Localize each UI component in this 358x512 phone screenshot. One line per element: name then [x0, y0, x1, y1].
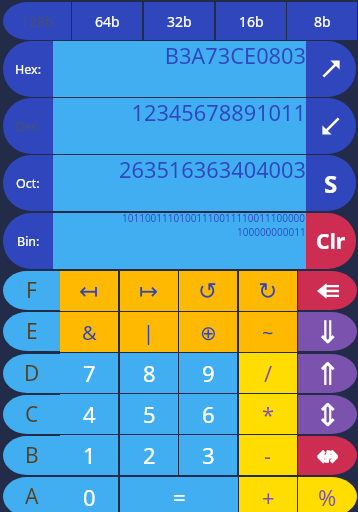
staticText: *: [262, 399, 275, 429]
button[interactable]: shift 1: [120, 271, 178, 311]
staticText: +: [262, 482, 275, 512]
staticText: Dec:: [15, 118, 41, 135]
staticText: |: [143, 319, 155, 346]
button[interactable]: 6: [179, 394, 237, 434]
staticText: Hex:: [15, 61, 42, 78]
staticText: B3A73CE0803: [164, 41, 306, 71]
button[interactable]: Collapse decimal: [306, 98, 356, 154]
button[interactable]: Bin:: [3, 213, 53, 269]
staticText: 8: [143, 358, 156, 388]
staticText: /: [264, 358, 273, 388]
staticText: -: [264, 440, 272, 470]
button[interactable]: Expand hexadecimal: [306, 41, 356, 97]
button[interactable]: /: [239, 353, 297, 393]
button[interactable]: plus: [239, 477, 297, 512]
button[interactable]: 0: [60, 477, 118, 512]
button[interactable]: or: [120, 312, 178, 352]
button[interactable]: 5: [120, 394, 178, 434]
button[interactable]: 8b: [287, 2, 357, 40]
staticText: S: [324, 167, 338, 200]
staticText: 128b: [21, 12, 54, 31]
button[interactable]: Clear: [306, 213, 356, 269]
staticText: C: [25, 400, 39, 429]
button[interactable]: 10110011101001110011110011100000: [53, 213, 306, 269]
staticText: Clr: [316, 227, 346, 256]
staticText: A: [25, 482, 39, 511]
button[interactable]: 128b: [3, 2, 71, 40]
staticText: 16b: [239, 12, 264, 31]
button[interactable]: B3A73CE0803: [53, 41, 306, 97]
button[interactable]: 12345678891011: [53, 98, 306, 154]
staticText: Oct:: [16, 175, 40, 192]
staticText: 4: [83, 399, 96, 429]
button[interactable]: and: [60, 312, 118, 352]
staticText: Bin:: [17, 233, 40, 250]
staticText: D: [24, 359, 40, 388]
button[interactable]: 64b: [72, 2, 142, 40]
staticText: 2: [143, 440, 156, 470]
button[interactable]: Reverse bytes: [298, 436, 357, 475]
staticText: 7: [83, 358, 96, 388]
button[interactable]: xor: [179, 312, 237, 352]
button[interactable]: 8: [120, 353, 178, 393]
button[interactable]: D: [3, 354, 60, 393]
button[interactable]: 32b: [144, 2, 214, 40]
staticText: 3: [202, 440, 215, 470]
staticText: ⇓: [315, 314, 341, 350]
staticText: &: [82, 319, 97, 346]
button[interactable]: 4: [60, 394, 118, 434]
button[interactable]: E: [3, 312, 60, 351]
button[interactable]: C: [3, 395, 60, 434]
staticText: ↮: [317, 441, 339, 471]
staticText: 32b: [167, 12, 192, 31]
button[interactable]: equals: [120, 477, 238, 512]
button[interactable]: 1: [60, 435, 118, 475]
button[interactable]: A: [3, 477, 60, 512]
staticText: ⇕: [315, 397, 341, 433]
button[interactable]: Backspace: [298, 271, 357, 310]
button[interactable]: F: [3, 271, 60, 310]
button[interactable]: -: [239, 435, 297, 475]
button[interactable]: shift 2: [179, 271, 237, 311]
button[interactable]: 9: [179, 353, 237, 393]
staticText: 100000000011: [237, 225, 306, 239]
button[interactable]: 263516363404003: [53, 155, 306, 211]
staticText: 5: [143, 399, 156, 429]
staticText: ⊕: [200, 321, 217, 344]
staticText: %: [318, 482, 337, 512]
staticText: F: [26, 276, 37, 305]
staticText: 9: [202, 358, 215, 388]
button[interactable]: Sign: [306, 155, 356, 211]
staticText: 263516363404003: [118, 155, 306, 185]
staticText: E: [26, 317, 38, 346]
button[interactable]: Shift up: [298, 354, 357, 393]
button[interactable]: Percent: [298, 477, 357, 512]
button[interactable]: 16b: [216, 2, 286, 40]
staticText: B: [25, 441, 39, 470]
staticText: 64b: [95, 12, 120, 31]
button[interactable]: B: [3, 436, 60, 475]
button[interactable]: Hex:: [3, 41, 53, 97]
button[interactable]: Shift down: [298, 312, 357, 351]
button[interactable]: 7: [60, 353, 118, 393]
staticText: ~: [262, 319, 274, 346]
staticText: ↺: [198, 278, 218, 305]
staticText: 8b: [314, 12, 331, 31]
staticText: ↤: [79, 278, 99, 305]
button[interactable]: not: [239, 312, 297, 352]
staticText: 0: [83, 482, 96, 512]
staticText: ↻: [258, 278, 278, 305]
button[interactable]: Oct:: [3, 155, 53, 211]
button[interactable]: Dec:: [3, 98, 53, 154]
staticText: 12345678891011: [131, 98, 306, 128]
button[interactable]: Swap words: [298, 395, 357, 434]
button[interactable]: shift 0: [60, 271, 118, 311]
staticText: =: [173, 482, 186, 512]
staticText: ⇑: [315, 356, 341, 392]
staticText: ↦: [139, 278, 159, 305]
button[interactable]: *: [239, 394, 297, 434]
button[interactable]: 2: [120, 435, 178, 475]
staticText: 6: [202, 399, 215, 429]
button[interactable]: shift 3: [239, 271, 297, 311]
button[interactable]: 3: [179, 435, 237, 475]
